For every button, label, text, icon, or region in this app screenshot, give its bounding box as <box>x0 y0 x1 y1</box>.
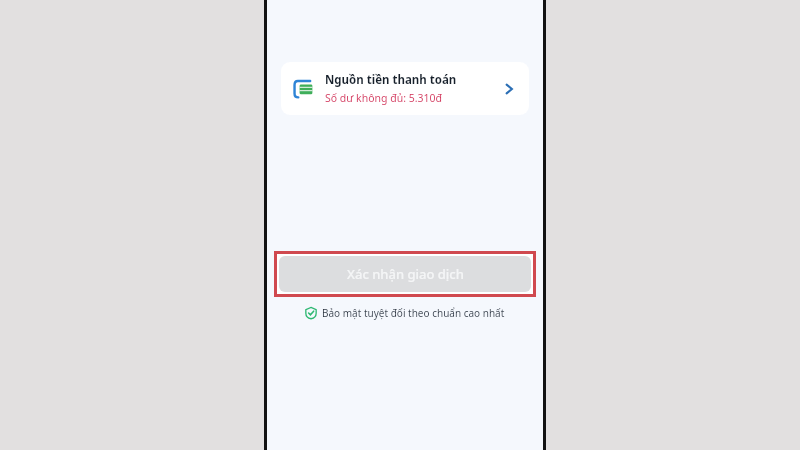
button[interactable]: Xác nhận giao dịch <box>279 256 531 292</box>
staticText: Xác nhận giao dịch <box>347 265 464 283</box>
staticText: Số dư không đủ: 5.310đ <box>325 91 443 105</box>
staticText: Bảo mật tuyệt đối theo chuẩn cao nhất <box>322 306 505 320</box>
staticText: Nguồn tiền thanh toán <box>325 72 457 88</box>
button[interactable]: Nguồn tiền thanh toán <box>281 62 529 115</box>
other: Chọn nguồn tiền <box>499 79 519 99</box>
